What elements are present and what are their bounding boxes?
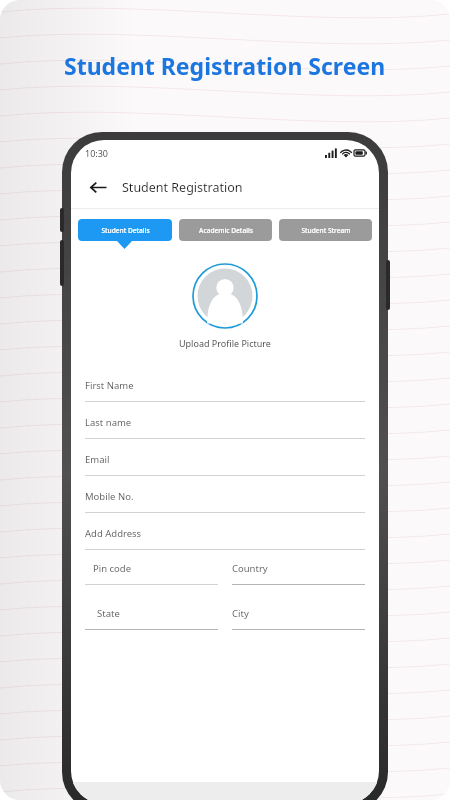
staticText: City bbox=[232, 607, 249, 620]
staticText: 10:30 bbox=[85, 147, 109, 159]
button[interactable]: Upload Profile Picture bbox=[192, 263, 258, 329]
button[interactable]: City bbox=[232, 607, 365, 630]
staticText: Upload Profile Picture bbox=[179, 337, 271, 349]
button[interactable]: Country bbox=[232, 562, 365, 585]
button[interactable]: Mobile No. bbox=[85, 476, 365, 513]
button[interactable]: Pin code bbox=[85, 562, 218, 585]
staticText: Student Registration Screen bbox=[64, 50, 386, 81]
button[interactable]: Student Stream bbox=[279, 219, 372, 241]
staticText: State bbox=[97, 607, 120, 620]
button[interactable]: Academic Details bbox=[179, 219, 272, 241]
staticText: Academic Details bbox=[199, 226, 253, 235]
staticText: Mobile No. bbox=[85, 490, 134, 503]
staticText: Student Details bbox=[101, 226, 150, 235]
staticText: Add Address bbox=[85, 527, 142, 540]
staticText: Student Stream bbox=[301, 226, 351, 235]
button[interactable]: State bbox=[85, 607, 218, 630]
button[interactable]: Back bbox=[84, 173, 112, 201]
staticText: Student Registration bbox=[122, 179, 243, 196]
button[interactable]: Email bbox=[85, 439, 365, 476]
staticText: First Name bbox=[85, 379, 134, 392]
button[interactable]: First Name bbox=[85, 365, 365, 402]
staticText: Pin code bbox=[93, 562, 132, 575]
staticText: Country bbox=[232, 562, 268, 575]
button[interactable]: Last name bbox=[85, 402, 365, 439]
staticText: Email bbox=[85, 453, 110, 466]
button[interactable]: Add Address bbox=[85, 513, 365, 550]
button[interactable]: Student Details bbox=[78, 219, 172, 241]
staticText: Last name bbox=[85, 416, 132, 429]
